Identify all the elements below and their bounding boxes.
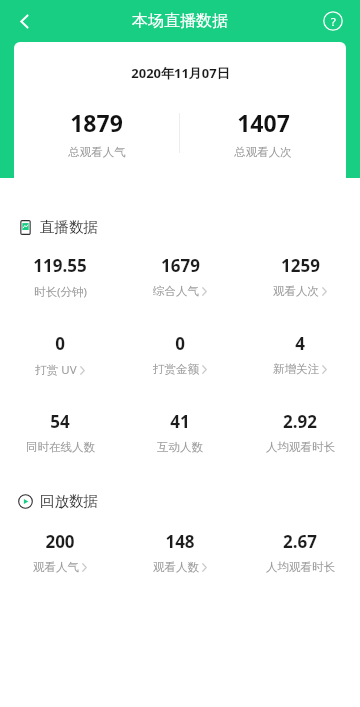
staticText: 41	[170, 410, 190, 433]
staticText: 打赏金额	[153, 362, 199, 376]
button[interactable]: Back	[4, 1, 44, 41]
staticText: 2020年11月07日	[131, 64, 230, 82]
staticText: 0	[55, 332, 65, 355]
staticText: 观看人次	[273, 284, 319, 298]
button[interactable]: 1259	[240, 254, 360, 298]
button[interactable]: 1679	[120, 254, 240, 298]
staticText: ?	[331, 14, 336, 29]
button[interactable]: 0	[0, 332, 120, 378]
staticText: 打赏 UV	[35, 362, 77, 378]
staticText: 0	[175, 332, 185, 355]
staticText: 54	[50, 410, 70, 433]
staticText: 人均观看时长	[266, 560, 335, 574]
staticText: 148	[165, 530, 195, 553]
staticText: 200	[45, 530, 75, 553]
button[interactable]: 2.92	[240, 410, 360, 454]
button[interactable]: 119.55	[0, 254, 120, 300]
staticText: 互动人数	[157, 440, 203, 454]
staticText: 119.55	[33, 254, 87, 277]
button[interactable]: 41	[120, 410, 240, 454]
button[interactable]: 0	[120, 332, 240, 376]
button[interactable]: 2.67	[240, 530, 360, 574]
button[interactable]: 54	[0, 410, 120, 454]
button[interactable]: 200	[0, 530, 120, 574]
staticText: 观看人气	[33, 560, 79, 574]
staticText: 新增关注	[273, 362, 319, 376]
staticText: 直播数据	[40, 218, 98, 236]
staticText: 1679	[161, 254, 200, 277]
staticText: 总观看人气	[68, 145, 126, 159]
button[interactable]: 1407	[180, 107, 346, 159]
staticText: 时长(分钟)	[34, 284, 87, 300]
button[interactable]: Help	[316, 4, 350, 38]
staticText: 回放数据	[40, 492, 98, 510]
button[interactable]: 直播数据	[18, 218, 360, 236]
button[interactable]: 回放数据	[18, 492, 360, 510]
staticText: 2.67	[283, 530, 317, 553]
button[interactable]: 148	[120, 530, 240, 574]
button[interactable]: 4	[240, 332, 360, 376]
staticText: 总观看人次	[234, 145, 292, 159]
staticText: 同时在线人数	[26, 440, 95, 454]
staticText: 观看人数	[153, 560, 199, 574]
staticText: 4	[295, 332, 305, 355]
staticText: 综合人气	[153, 284, 199, 298]
staticText: 1407	[237, 107, 290, 138]
staticText: 2.92	[283, 410, 317, 433]
staticText: 1259	[281, 254, 320, 277]
button[interactable]: 1879	[14, 107, 179, 159]
staticText: 1879	[70, 107, 123, 138]
staticText: 人均观看时长	[266, 440, 335, 454]
staticText: 本场直播数据	[132, 11, 228, 31]
